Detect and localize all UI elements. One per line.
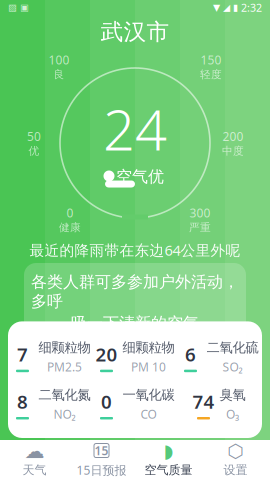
staticText: 一氧化碳 bbox=[122, 387, 174, 403]
staticText: ▮ bbox=[233, 2, 238, 13]
staticText: 天气 bbox=[22, 463, 46, 477]
button[interactable]: ☁ bbox=[1, 440, 68, 480]
staticText: 空气优 bbox=[116, 167, 164, 187]
staticText: ⬡ bbox=[227, 440, 243, 462]
staticText: 20 bbox=[95, 342, 117, 367]
staticText: 武汉市 bbox=[100, 18, 169, 46]
staticText: 300 bbox=[189, 205, 210, 221]
staticText: 吸一下清新的空气 bbox=[71, 313, 199, 333]
staticText: ◗ bbox=[106, 169, 113, 184]
staticText: O₃ bbox=[226, 406, 239, 422]
staticText: 优 bbox=[28, 144, 39, 157]
staticText: ☁ bbox=[24, 440, 44, 462]
staticText: SO₂ bbox=[222, 359, 242, 375]
staticText: 200 bbox=[222, 128, 243, 144]
staticText: 6 bbox=[185, 342, 196, 367]
staticText: 最近的降雨带在东边64公里外呢 bbox=[29, 240, 240, 260]
staticText: 15 bbox=[94, 443, 108, 458]
staticText: 中度 bbox=[222, 144, 244, 157]
staticText: 良 bbox=[53, 68, 64, 81]
staticText: PM 10 bbox=[131, 359, 166, 375]
staticText: ◗ bbox=[163, 440, 173, 462]
staticText: 24 bbox=[103, 91, 167, 166]
staticText: NO₂ bbox=[53, 406, 75, 422]
staticText: 严重 bbox=[189, 221, 211, 234]
staticText: ▼ bbox=[213, 2, 220, 13]
staticText: ▨ bbox=[8, 2, 17, 13]
staticText: PM2.5 bbox=[47, 359, 82, 375]
staticText: ▣ bbox=[20, 2, 29, 13]
staticText: 100 bbox=[48, 52, 69, 68]
button[interactable]: ◗ bbox=[135, 440, 202, 480]
staticText: 15日预报 bbox=[76, 462, 126, 478]
staticText: 7 bbox=[17, 342, 28, 367]
staticText: CO bbox=[140, 406, 156, 422]
staticText: 二氧化硫 bbox=[206, 339, 258, 356]
staticText: 空气质量 bbox=[144, 463, 192, 477]
staticText: ◢ bbox=[223, 2, 230, 13]
staticText: 设置 bbox=[223, 463, 247, 477]
button[interactable]: ⬡ bbox=[202, 440, 269, 480]
staticText: 各类人群可多参加户外活动，多呼 bbox=[31, 272, 239, 311]
button[interactable]: 15 bbox=[68, 440, 135, 480]
staticText: 健康 bbox=[59, 221, 81, 234]
staticText: 150 bbox=[200, 52, 221, 68]
staticText: 8 bbox=[17, 389, 28, 414]
staticText: 50 bbox=[27, 128, 41, 144]
staticText: 细颗粒物 bbox=[122, 339, 174, 356]
staticText: 轻度 bbox=[200, 68, 222, 81]
staticText: 臭氧 bbox=[219, 387, 245, 403]
staticText: 0 bbox=[101, 389, 112, 414]
staticText: 0 bbox=[66, 205, 73, 221]
staticText: 2:32 bbox=[241, 0, 262, 15]
staticText: 74 bbox=[192, 389, 214, 414]
staticText: 二氧化氮 bbox=[38, 387, 90, 403]
staticText: 细颗粒物 bbox=[38, 339, 90, 356]
